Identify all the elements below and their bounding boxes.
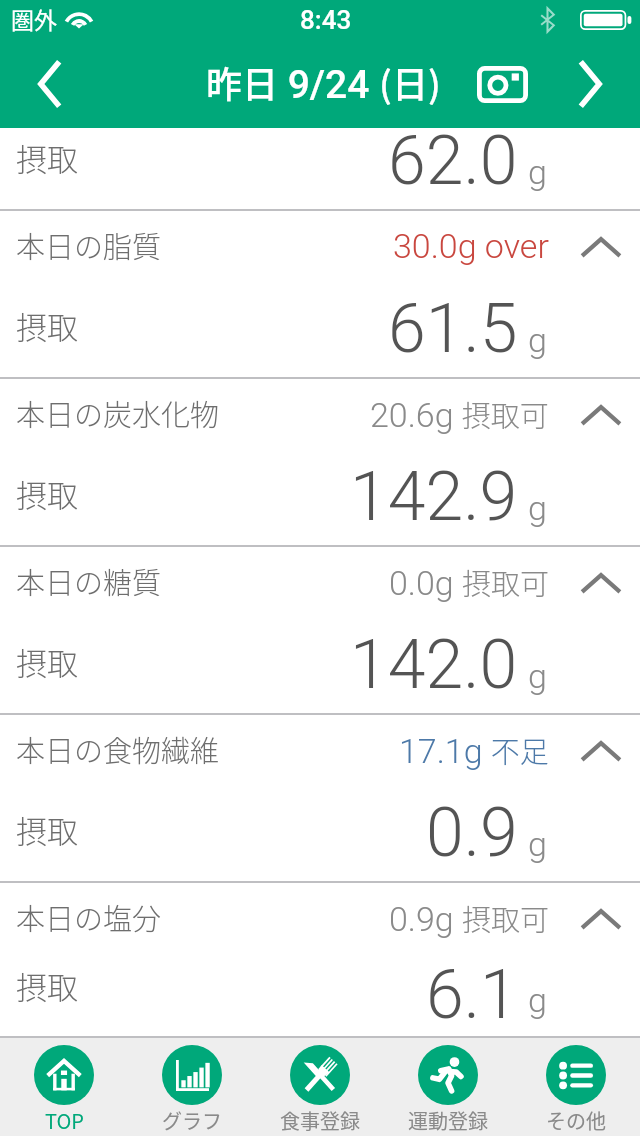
staticText: 摂取: [16, 639, 78, 684]
staticText: 運動登録: [408, 1106, 488, 1135]
staticText: その他: [546, 1106, 606, 1135]
staticText: 0.0g 摂取可: [389, 561, 549, 603]
button[interactable]: グラフ: [128, 1038, 256, 1136]
staticText: 0.9: [426, 793, 518, 873]
staticText: 0.9g 摂取可: [389, 897, 549, 939]
staticText: 食事登録: [280, 1106, 360, 1135]
staticText: 142.9: [350, 457, 518, 537]
button[interactable]: 本日の塩分: [0, 883, 640, 957]
button[interactable]: その他: [512, 1038, 640, 1136]
button[interactable]: 本日の糖質: [0, 547, 640, 621]
staticText: 圏外: [11, 2, 57, 35]
staticText: 摂取: [16, 963, 78, 1008]
button[interactable]: Camera: [472, 40, 532, 128]
staticText: g: [528, 320, 547, 360]
staticText: 本日の食物繊維: [16, 728, 220, 770]
staticText: 61.5: [388, 289, 518, 369]
staticText: 昨日 9/24 (日): [206, 56, 441, 108]
staticText: g: [528, 656, 547, 696]
button[interactable]: 食事登録: [256, 1038, 384, 1136]
button[interactable]: 本日の食物繊維: [0, 715, 640, 789]
button[interactable]: 摂取: [0, 285, 640, 377]
staticText: g: [528, 152, 547, 192]
staticText: グラフ: [162, 1106, 222, 1135]
staticText: g: [528, 824, 547, 864]
button[interactable]: 本日の炭水化物: [0, 379, 640, 453]
button[interactable]: 運動登録: [384, 1038, 512, 1136]
staticText: TOP: [45, 1106, 84, 1135]
staticText: 摂取: [16, 471, 78, 516]
button[interactable]: Previous day: [0, 40, 100, 128]
staticText: 8:43: [300, 5, 352, 35]
staticText: 20.6g 摂取可: [370, 393, 549, 435]
staticText: 17.1g 不足: [399, 729, 549, 771]
staticText: 本日の糖質: [16, 560, 162, 602]
staticText: 摂取: [16, 135, 78, 180]
button[interactable]: 摂取: [0, 117, 640, 209]
staticText: 30.0g over: [393, 226, 549, 266]
staticText: g: [528, 488, 547, 528]
staticText: 本日の炭水化物: [16, 392, 220, 434]
staticText: g: [528, 980, 547, 1020]
button[interactable]: 摂取: [0, 957, 640, 1025]
staticText: 本日の脂質: [16, 224, 162, 266]
staticText: 摂取: [16, 303, 78, 348]
button[interactable]: 摂取: [0, 621, 640, 713]
staticText: 142.0: [350, 625, 518, 705]
button[interactable]: Next day: [540, 40, 640, 128]
button[interactable]: 摂取: [0, 453, 640, 545]
button[interactable]: 摂取: [0, 789, 640, 881]
staticText: 62.0: [388, 121, 518, 201]
staticText: 摂取: [16, 807, 78, 852]
button[interactable]: TOP: [0, 1038, 128, 1136]
button[interactable]: 本日の脂質: [0, 211, 640, 285]
staticText: 本日の塩分: [16, 896, 162, 938]
staticText: 6.1: [426, 955, 518, 1023]
